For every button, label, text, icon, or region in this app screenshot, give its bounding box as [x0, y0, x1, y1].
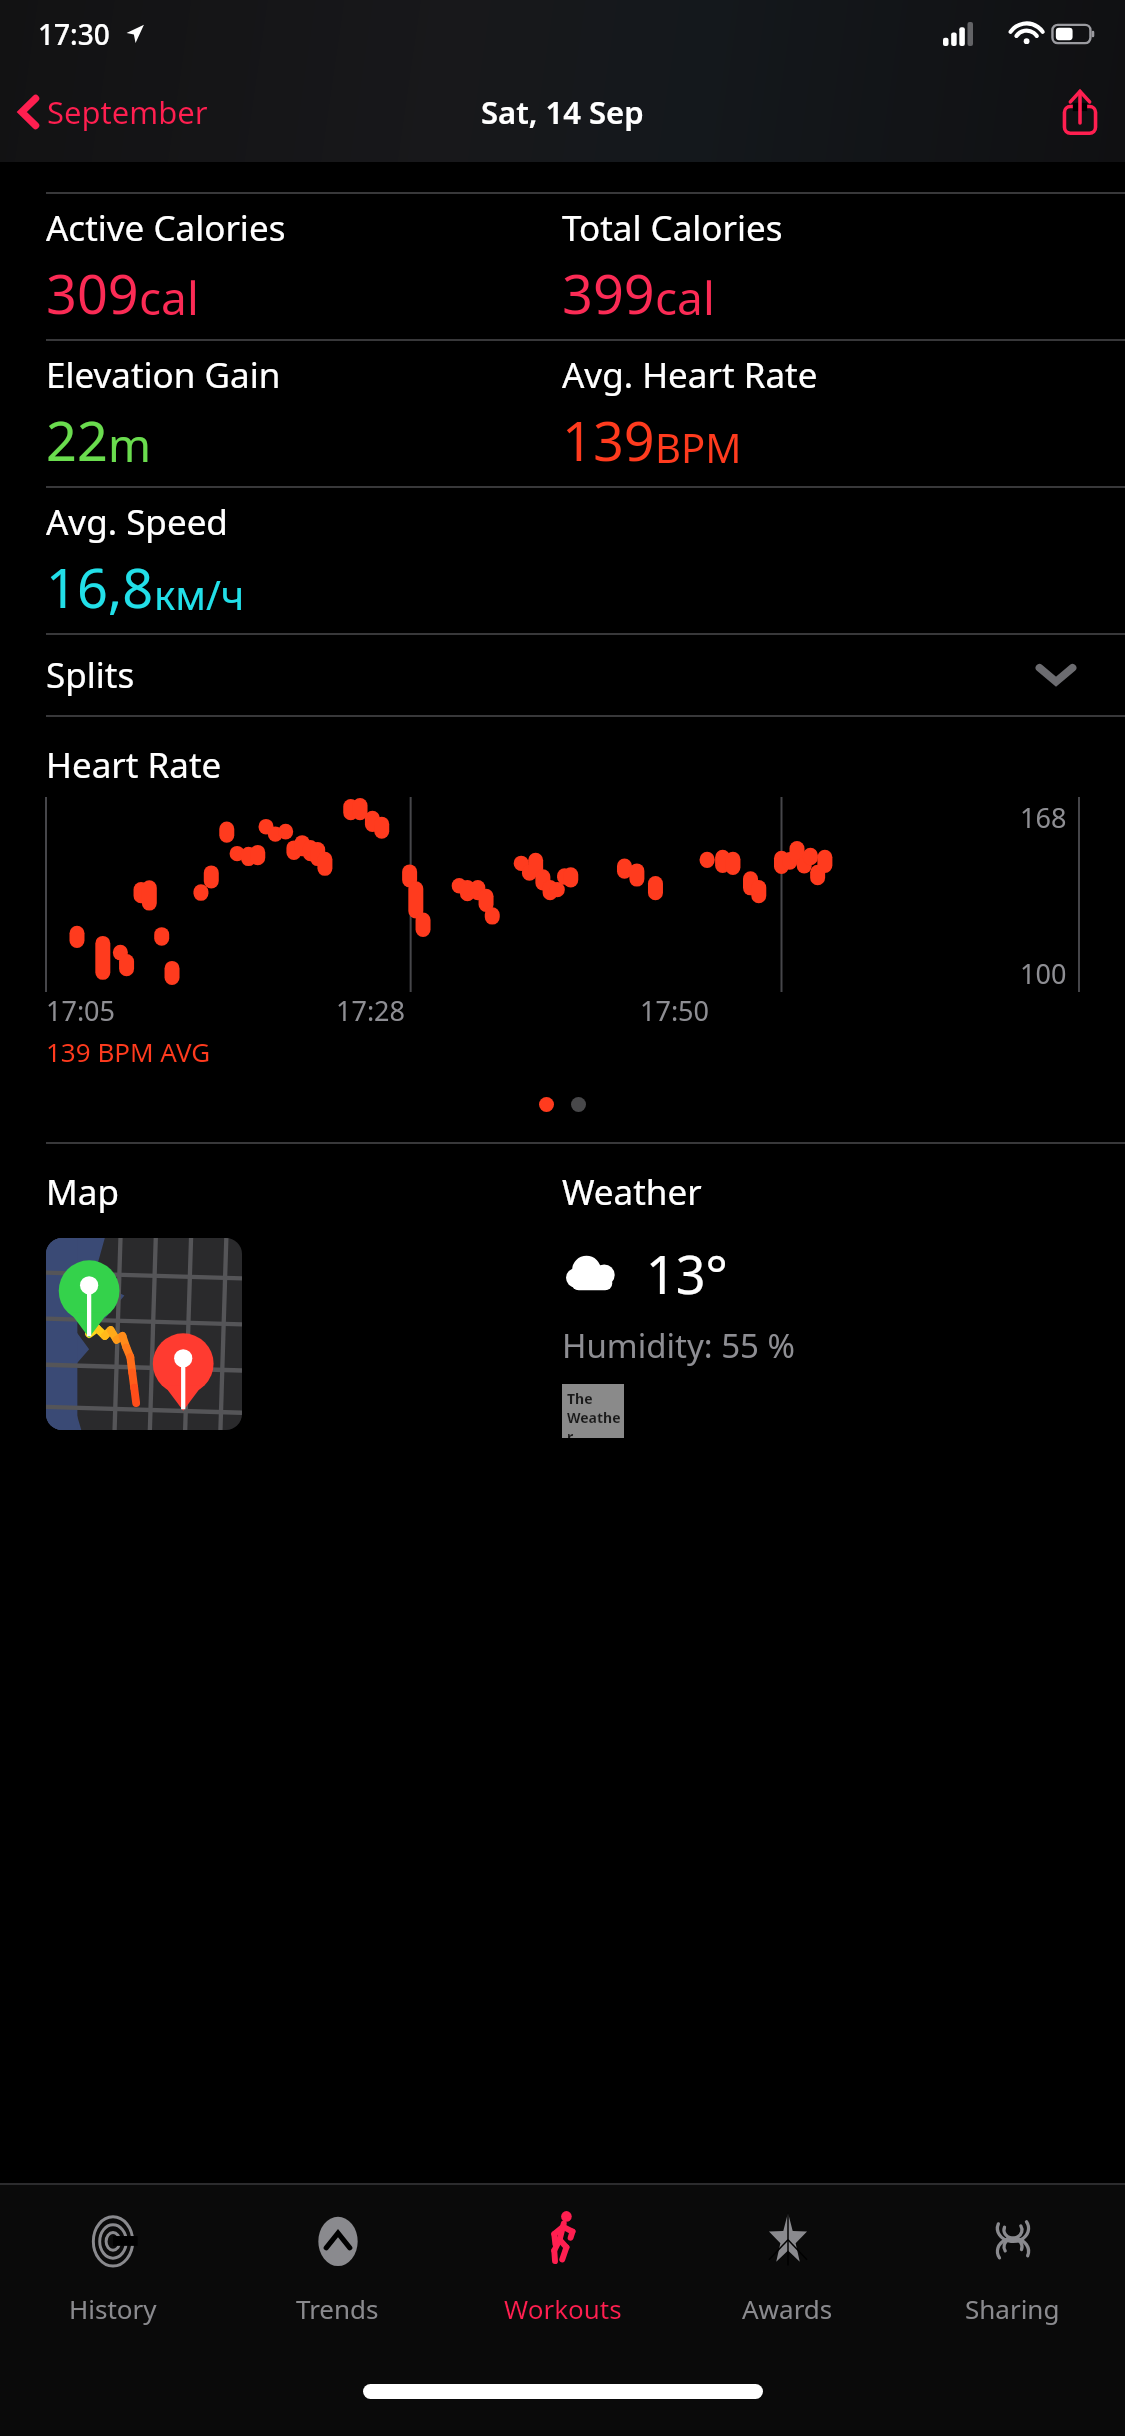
staticText: Avg. Speed [46, 498, 228, 546]
staticText: 139 BPM AVG [46, 1034, 211, 1069]
staticText: cal [139, 266, 199, 329]
staticText: 16,8 [46, 550, 154, 624]
staticText: The [567, 1389, 593, 1408]
button[interactable]: Sharing [900, 2185, 1125, 2370]
staticText: 309 [46, 256, 139, 330]
staticText: км/ч [154, 567, 245, 621]
staticText: 399 [562, 256, 655, 330]
staticText: Humidity: 55 % [562, 1323, 795, 1368]
staticText: September [47, 91, 208, 133]
staticText: Weather [562, 1168, 702, 1216]
staticText: Total Calories [562, 204, 783, 252]
staticText: 139 [562, 403, 655, 477]
staticText: Elevation Gain [46, 351, 281, 399]
staticText: Sat, 14 Sep [481, 91, 644, 133]
staticText: History [69, 2291, 157, 2326]
staticText: 13° [646, 1238, 728, 1309]
staticText: Splits [46, 651, 135, 699]
staticText: 17:28 [336, 992, 406, 1029]
staticText: 22 [46, 403, 108, 477]
staticText: Weather [567, 1408, 624, 1438]
staticText: Map [46, 1168, 119, 1216]
button[interactable]: Awards [675, 2185, 900, 2370]
staticText: 17:30 [38, 15, 110, 53]
staticText: Heart Rate [46, 741, 222, 789]
button[interactable]: September [0, 81, 222, 143]
staticText: BPM [655, 420, 742, 474]
staticText: m [108, 413, 152, 476]
button[interactable]: Trends [225, 2185, 450, 2370]
staticText: Avg. Heart Rate [562, 351, 818, 399]
button[interactable]: Splits [0, 635, 1125, 715]
staticText: Trends [296, 2291, 379, 2326]
staticText: Awards [742, 2291, 833, 2326]
button[interactable]: History [0, 2185, 225, 2370]
staticText: 168 [1020, 799, 1067, 836]
staticText: cal [655, 266, 715, 329]
staticText: 17:05 [46, 992, 116, 1029]
staticText: Workouts [504, 2291, 622, 2326]
button[interactable]: Workouts [450, 2185, 675, 2370]
staticText: Active Calories [46, 204, 286, 252]
staticText: 100 [1020, 955, 1067, 992]
staticText: Sharing [965, 2291, 1060, 2326]
button[interactable]: Route map [46, 1238, 242, 1430]
staticText: 17:50 [640, 992, 710, 1029]
button[interactable]: Share [1035, 75, 1125, 149]
